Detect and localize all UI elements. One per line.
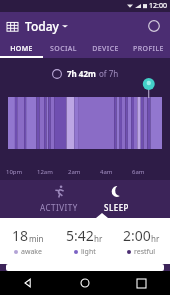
staticText: DEVICE	[92, 44, 119, 54]
staticText: 2am	[68, 168, 81, 176]
staticText: 6am	[132, 168, 145, 176]
staticText: light	[81, 247, 96, 257]
other: Sleep	[110, 185, 123, 198]
staticText: 18	[12, 226, 29, 245]
staticText: min	[29, 233, 44, 244]
button[interactable]: Recents	[113, 271, 170, 295]
staticText: Today	[25, 18, 59, 34]
staticText: SLEEP	[104, 202, 129, 213]
staticText: 10pm	[6, 168, 23, 176]
staticText: 12:00	[149, 1, 167, 11]
staticText: restful	[134, 247, 156, 257]
staticText: awake	[21, 247, 43, 257]
staticText: 7h 42m	[67, 68, 96, 79]
staticText: PROFILE	[133, 44, 164, 54]
staticText: hr	[151, 233, 160, 244]
other: Activity	[53, 185, 66, 198]
button[interactable]: Sleep	[90, 180, 142, 218]
button[interactable]: Home	[56, 271, 113, 295]
button[interactable]: Back	[0, 271, 56, 295]
staticText: 2:00	[123, 226, 151, 245]
button[interactable]: PROFILE	[127, 39, 170, 58]
button[interactable]: HOME	[0, 39, 42, 58]
staticText: ACTIVITY	[40, 202, 78, 213]
staticText: 5:42	[66, 226, 94, 245]
button[interactable]: SOCIAL	[42, 39, 84, 58]
staticText: HOME	[10, 44, 33, 54]
staticText: of 7h	[99, 68, 119, 79]
button[interactable]: Activity	[28, 180, 90, 218]
staticText: hr	[94, 233, 103, 244]
button[interactable]: Profile	[146, 18, 162, 34]
staticText: SOCIAL	[50, 44, 77, 54]
other: Calendar	[7, 21, 18, 32]
button[interactable]: Calendar	[7, 18, 68, 34]
button[interactable]: DEVICE	[84, 39, 127, 58]
button[interactable]: ACTIVITY REMAINING	[6, 264, 164, 271]
staticText: 12am	[37, 168, 53, 176]
staticText: 4am	[100, 168, 113, 176]
